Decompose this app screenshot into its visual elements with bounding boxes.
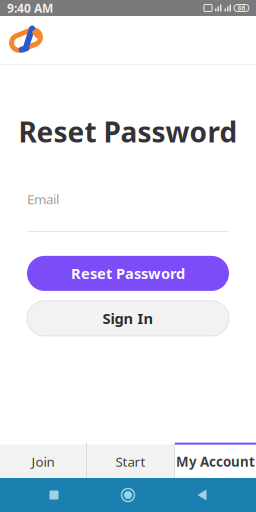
button[interactable]: Start xyxy=(87,443,174,478)
staticText: Reset Password xyxy=(71,264,185,283)
button[interactable]: Join xyxy=(0,443,86,478)
button[interactable]: My Account xyxy=(175,443,256,478)
staticText: Start xyxy=(115,453,145,470)
button[interactable]: Reset Password xyxy=(27,256,229,291)
staticText: Email xyxy=(27,190,59,208)
button[interactable]: Back xyxy=(182,478,222,512)
button[interactable]: Recent apps xyxy=(34,478,74,512)
staticText: 86 xyxy=(237,4,245,12)
staticText: Sign In xyxy=(102,309,153,328)
button[interactable]: Home xyxy=(6,23,46,57)
staticText: Reset Password xyxy=(18,113,237,150)
staticText: 9:40 AM xyxy=(7,0,53,16)
button[interactable]: Home xyxy=(108,478,148,512)
staticText: My Account xyxy=(176,453,255,470)
staticText: Join xyxy=(31,453,54,470)
button[interactable]: Sign In xyxy=(27,301,229,336)
